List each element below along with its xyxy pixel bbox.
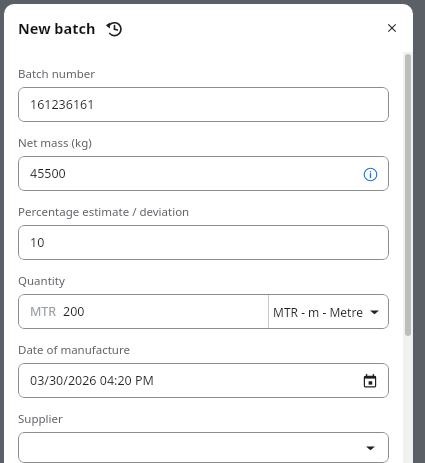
button[interactable]: 45500 xyxy=(18,156,389,191)
staticText: MTR xyxy=(30,303,57,320)
button[interactable]: Pick date xyxy=(359,370,381,392)
staticText: Supplier xyxy=(18,411,63,427)
button[interactable]: MTR xyxy=(18,294,389,329)
button[interactable]: New batch xyxy=(18,18,123,38)
staticText: Quantity xyxy=(18,273,65,289)
staticText: 45500 xyxy=(30,165,66,182)
staticText: New batch xyxy=(18,18,96,38)
staticText: 10 xyxy=(30,234,45,251)
button[interactable]: Close xyxy=(377,13,407,43)
button[interactable]: MTR - m - Metre xyxy=(273,304,379,320)
staticText: 200 xyxy=(63,303,85,320)
staticText: Net mass (kg) xyxy=(18,135,92,151)
staticText: Date of manufacture xyxy=(18,342,130,358)
staticText: 03/30/2026 04:20 PM xyxy=(30,372,154,389)
button[interactable]: 10 xyxy=(18,225,389,260)
staticText: 161236161 xyxy=(30,96,95,113)
staticText: Percentage estimate / deviation xyxy=(18,204,190,220)
staticText: MTR - m - Metre xyxy=(273,304,363,320)
button[interactable]: Open supplier list xyxy=(361,439,379,457)
button[interactable]: 161236161 xyxy=(18,87,389,122)
staticText: Batch number xyxy=(18,66,95,82)
other: History xyxy=(106,20,123,37)
button[interactable]: Open supplier list xyxy=(18,432,389,463)
button[interactable]: Information xyxy=(359,163,381,185)
button[interactable]: 03/30/2026 04:20 PM xyxy=(18,363,389,398)
